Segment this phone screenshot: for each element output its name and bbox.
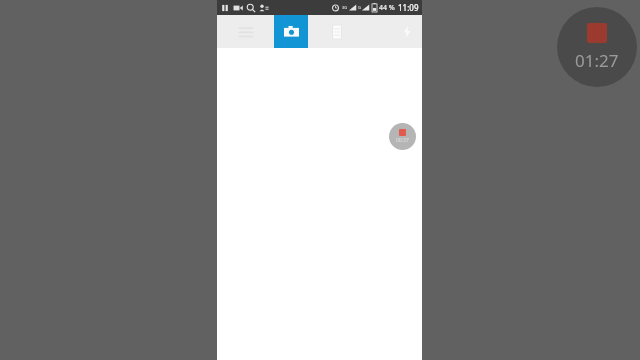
staticText: 11:09 (398, 2, 419, 13)
staticText: G (358, 5, 361, 10)
staticText: 00:37 (396, 137, 409, 144)
button[interactable]: Camera (274, 15, 308, 48)
staticText: 44 % (379, 3, 395, 13)
button[interactable]: Stop screen recording (557, 7, 637, 87)
staticText: 01:27 (575, 49, 619, 72)
staticText: 3G (342, 5, 348, 10)
button[interactable]: Stop recording (389, 123, 416, 150)
